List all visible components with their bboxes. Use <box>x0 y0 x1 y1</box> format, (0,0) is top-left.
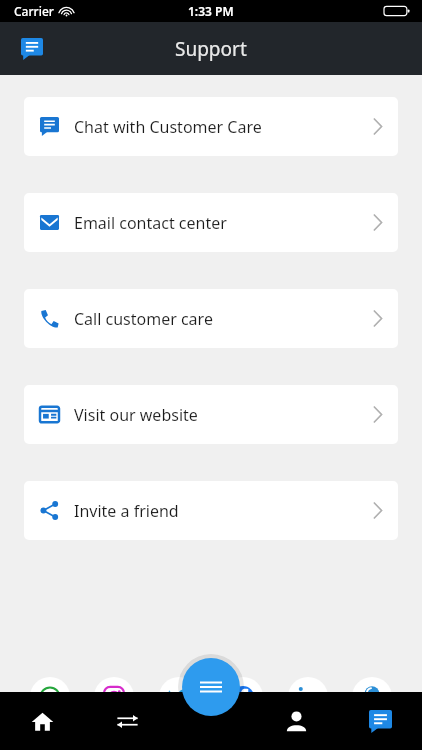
staticText: Carrier <box>14 3 54 19</box>
staticText: 1:33 PM <box>188 3 234 19</box>
button[interactable]: Menu <box>182 658 240 716</box>
button[interactable]: Instagram <box>94 677 134 717</box>
staticText: Visit our website <box>74 404 198 426</box>
button[interactable]: WhatsApp <box>30 677 70 717</box>
staticText: Support <box>175 36 247 62</box>
button[interactable]: Invite a friend <box>24 481 398 540</box>
button[interactable]: Messages <box>338 692 422 750</box>
button[interactable]: Twitter <box>159 677 199 717</box>
button[interactable]: Call customer care <box>24 289 398 348</box>
staticText: Chat with Customer Care <box>74 116 262 138</box>
button[interactable]: Home <box>0 692 85 750</box>
button[interactable]: LinkedIn <box>288 677 328 717</box>
button[interactable]: Profile <box>254 692 338 750</box>
staticText: Invite a friend <box>74 500 179 522</box>
staticText: Email contact center <box>74 212 227 234</box>
staticText: Call customer care <box>74 308 213 330</box>
button[interactable]: Facebook <box>223 677 263 717</box>
button[interactable]: Email contact center <box>24 193 398 252</box>
button[interactable]: Messages <box>12 29 52 69</box>
button[interactable]: Transfer <box>85 692 170 750</box>
button[interactable]: Visit our website <box>24 385 398 444</box>
button[interactable]: Location <box>352 677 392 717</box>
button[interactable]: Chat with Customer Care <box>24 97 398 156</box>
